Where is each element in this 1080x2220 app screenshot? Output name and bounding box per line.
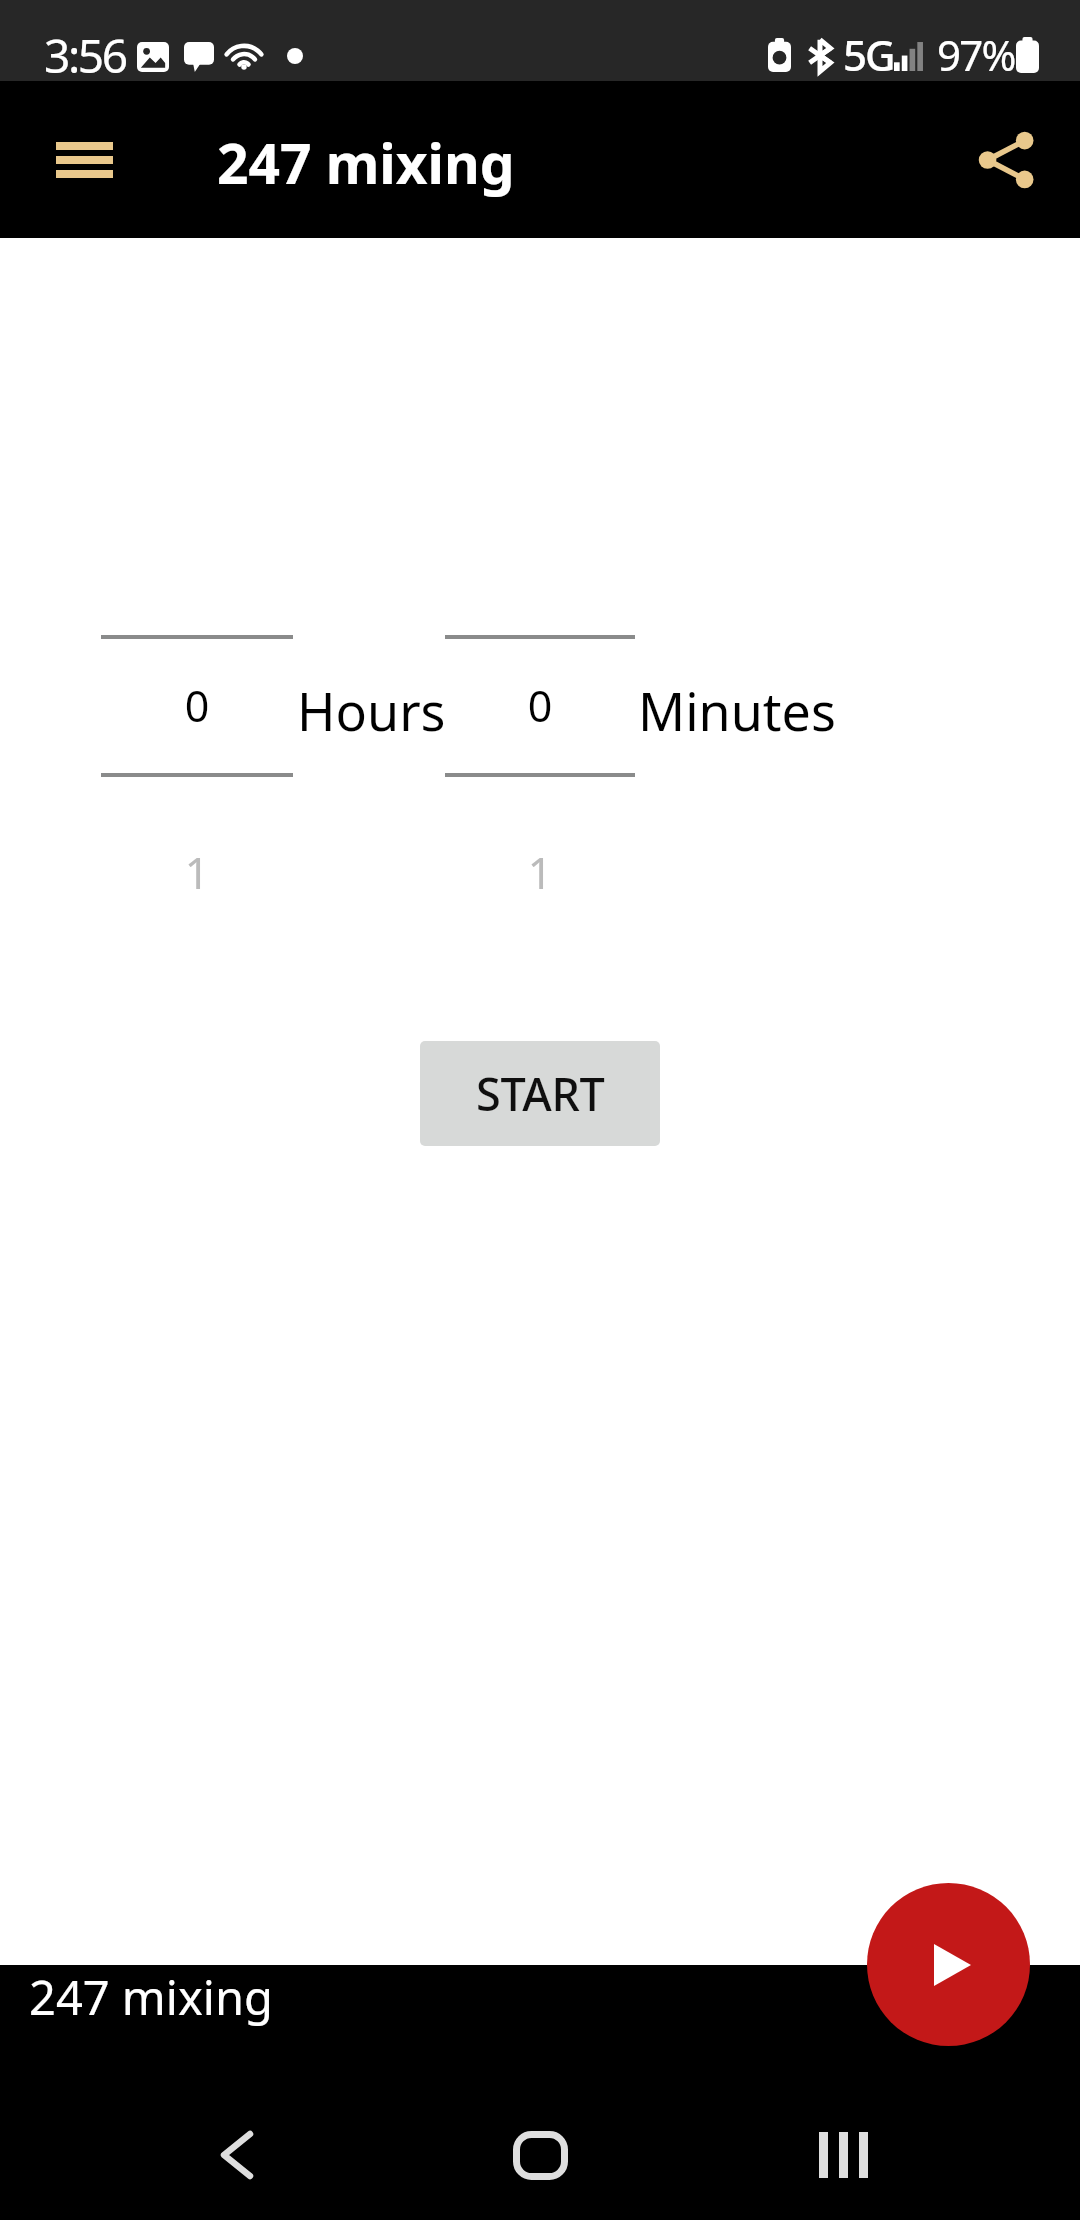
button[interactable]: 0	[101, 634, 293, 919]
button[interactable]: Play	[867, 1883, 1030, 2046]
staticText: 97%	[937, 26, 1015, 83]
staticText: START	[476, 1063, 605, 1124]
staticText: 1	[445, 843, 635, 902]
staticText: 3:56	[44, 24, 126, 87]
button[interactable]: 0	[445, 634, 635, 919]
button[interactable]: Back	[209, 2117, 265, 2193]
staticText: 0	[101, 676, 293, 735]
staticText: Hours	[297, 675, 446, 746]
staticText: 1	[101, 843, 293, 902]
button[interactable]: Open navigation menu	[40, 116, 128, 204]
button[interactable]: START	[420, 1041, 660, 1146]
staticText: 0	[445, 676, 635, 735]
button[interactable]: Recent apps	[815, 2117, 871, 2193]
staticText: 247 mixing	[217, 125, 515, 200]
staticText: 247 mixing	[29, 1965, 273, 2029]
staticText: Minutes	[638, 675, 836, 746]
staticText: 5G	[843, 26, 894, 83]
button[interactable]: Share	[963, 116, 1051, 204]
button[interactable]: Home	[512, 2117, 568, 2193]
